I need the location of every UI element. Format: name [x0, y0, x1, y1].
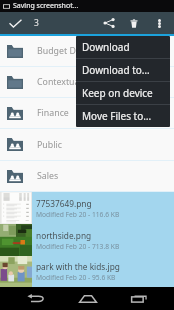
- button[interactable]: Contextual Docs: [0, 67, 174, 98]
- button[interactable]: park with the kids.jpg: [0, 256, 174, 287]
- button[interactable]: northside.png: [0, 224, 174, 256]
- staticText: Modified Feb 20 - 116.6 KB: [36, 210, 120, 219]
- button[interactable]: Recents: [113, 287, 164, 310]
- button[interactable]: Finance: [0, 98, 174, 129]
- staticText: 3: [34, 17, 39, 29]
- button[interactable]: Back: [10, 287, 62, 310]
- staticText: Budget Drafts: [37, 45, 95, 57]
- button[interactable]: More options: [147, 12, 171, 34]
- button[interactable]: Share: [97, 12, 121, 34]
- button[interactable]: Budget Drafts: [0, 36, 174, 67]
- staticText: Public: [37, 139, 62, 151]
- button[interactable]: Download: [76, 36, 170, 59]
- staticText: park with the kids.jpg: [36, 261, 120, 272]
- button[interactable]: Sales: [0, 161, 174, 192]
- staticText: Modified Feb 20 - 95.6 KB: [36, 273, 116, 282]
- button[interactable]: Public: [0, 129, 174, 161]
- staticText: Sales: [37, 170, 59, 182]
- button[interactable]: 77537649.png: [0, 192, 174, 224]
- staticText: Contextual Docs: [37, 76, 105, 88]
- button[interactable]: Done: [0, 12, 31, 34]
- staticText: Download to…: [82, 63, 150, 77]
- staticText: Modified Feb 20 - 713.8 KB: [36, 242, 120, 251]
- staticText: northside.png: [36, 230, 92, 241]
- staticText: Download: [82, 40, 130, 54]
- staticText: 77537649.png: [36, 198, 92, 209]
- staticText: Saving screenshot…: [13, 1, 79, 11]
- staticText: Finance: [37, 107, 69, 119]
- button[interactable]: Delete: [121, 12, 147, 34]
- staticText: Move Files to…: [82, 109, 152, 123]
- button[interactable]: Keep on device: [76, 82, 170, 105]
- button[interactable]: Move Files to…: [76, 105, 170, 127]
- button[interactable]: Download to…: [76, 59, 170, 82]
- staticText: Keep on device: [82, 86, 153, 100]
- button[interactable]: Home: [62, 287, 113, 310]
